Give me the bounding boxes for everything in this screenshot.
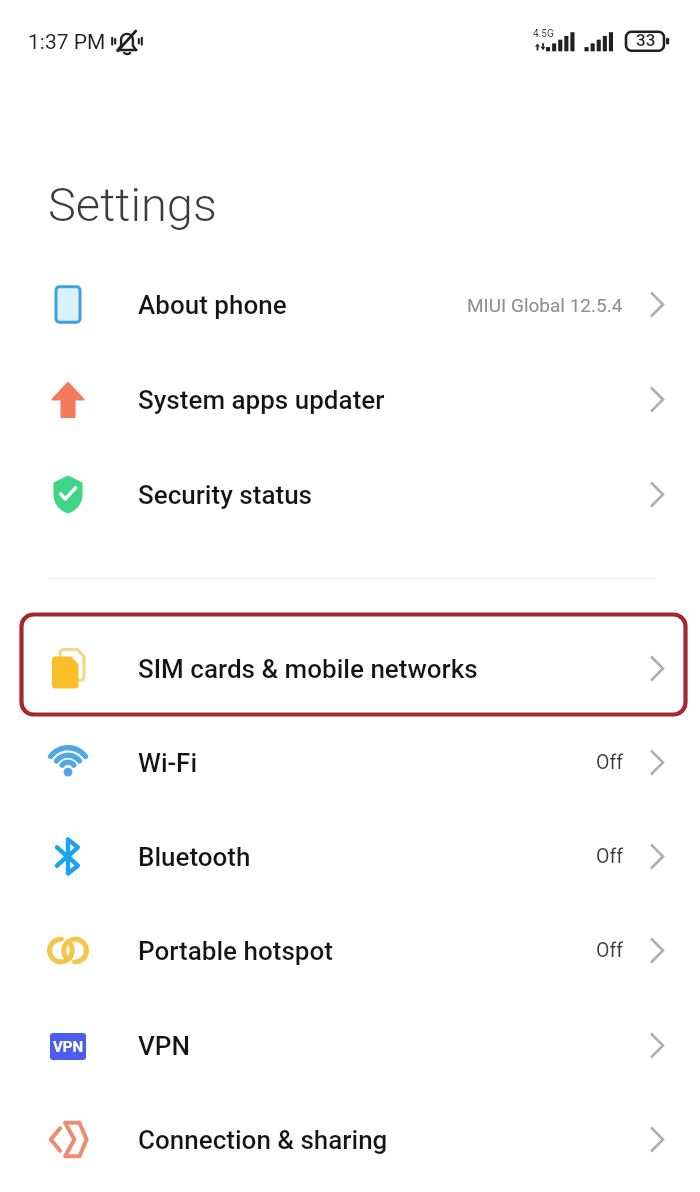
- staticText: Off: [596, 939, 623, 962]
- staticText: Off: [596, 845, 623, 868]
- staticText: Off: [596, 751, 623, 774]
- staticText: 4.5G: [533, 28, 554, 40]
- button[interactable]: SIM cards & mobile networks: [0, 621, 700, 716]
- button[interactable]: Portable hotspot: [0, 903, 700, 998]
- staticText: Portable hotspot: [138, 936, 333, 966]
- button[interactable]: System apps updater: [0, 352, 700, 447]
- staticText: SIM cards & mobile networks: [138, 654, 478, 684]
- staticText: About phone: [138, 290, 287, 320]
- staticText: 33: [636, 30, 656, 50]
- staticText: MIUI Global 12.5.4: [467, 294, 623, 316]
- button[interactable]: Connection & sharing: [0, 1092, 700, 1187]
- button[interactable]: VPN: [0, 998, 700, 1093]
- staticText: VPN: [53, 1038, 84, 1056]
- staticText: Bluetooth: [138, 842, 251, 872]
- staticText: System apps updater: [138, 385, 385, 415]
- staticText: Connection & sharing: [138, 1125, 388, 1155]
- staticText: Wi-Fi: [138, 748, 198, 778]
- button[interactable]: Security status: [0, 447, 700, 542]
- staticText: VPN: [138, 1031, 190, 1061]
- button[interactable]: About phone: [0, 257, 700, 352]
- other: Highlight: [19, 612, 688, 717]
- staticText: Security status: [138, 480, 313, 510]
- staticText: 1:37 PM: [28, 30, 106, 55]
- staticText: Settings: [48, 177, 217, 232]
- button[interactable]: Wi-Fi: [0, 715, 700, 810]
- button[interactable]: Bluetooth: [0, 809, 700, 904]
